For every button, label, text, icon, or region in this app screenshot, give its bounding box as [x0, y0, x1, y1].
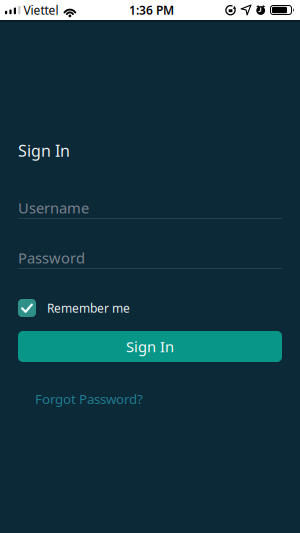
staticText: Username	[18, 198, 89, 217]
staticText: 1:36 PM	[129, 2, 174, 18]
staticText: Forgot Password?	[35, 390, 143, 408]
button[interactable]: Sign In	[18, 331, 282, 362]
staticText: Sign In	[18, 140, 70, 161]
staticText: Password	[18, 248, 85, 267]
button[interactable]: Remember me	[18, 299, 130, 317]
button[interactable]: Username	[18, 198, 282, 230]
button[interactable]: Password	[18, 248, 282, 280]
staticText: Remember me	[47, 300, 130, 316]
staticText: Viettel	[23, 2, 58, 18]
button[interactable]: Forgot Password?	[35, 390, 143, 408]
staticText: Sign In	[126, 337, 174, 356]
